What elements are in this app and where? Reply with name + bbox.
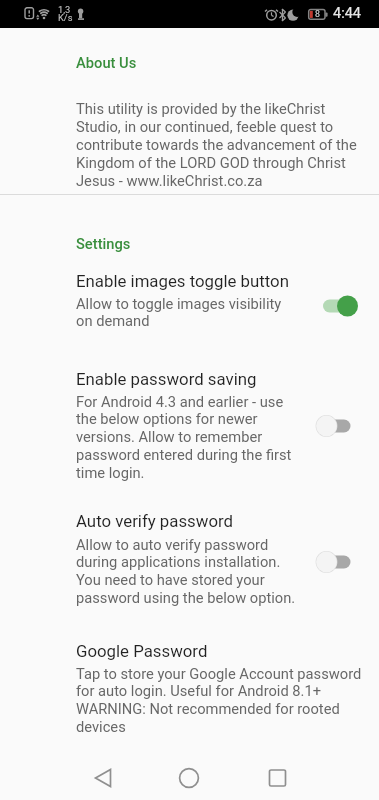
staticText: This utility is provided by the likeChri… <box>76 100 357 189</box>
button[interactable] <box>86 763 116 793</box>
staticText: 8 <box>315 9 320 19</box>
button[interactable] <box>0 633 379 716</box>
staticText: Auto verify password <box>76 511 233 531</box>
button[interactable] <box>0 503 379 587</box>
staticText: 4:44 <box>333 5 361 22</box>
staticText: Google Password <box>76 641 208 661</box>
button[interactable] <box>0 361 379 444</box>
staticText: Allow to auto verify password during app… <box>76 536 296 607</box>
button[interactable] <box>310 291 362 321</box>
staticText: K/s <box>58 12 73 23</box>
staticText: Settings <box>76 235 131 252</box>
button[interactable] <box>174 763 204 793</box>
button[interactable] <box>0 263 379 346</box>
staticText: Enable password saving <box>76 369 257 389</box>
button[interactable] <box>262 763 292 793</box>
staticText: 1,3 <box>58 4 71 15</box>
staticText: Tap to store your Google Account passwor… <box>76 665 362 736</box>
button[interactable] <box>310 547 362 577</box>
staticText: Enable images toggle button <box>76 271 289 291</box>
staticText: Allow to toggle images visibility on dem… <box>76 295 282 330</box>
button[interactable] <box>310 411 362 441</box>
staticText: For Android 4.3 and earlier - use the be… <box>76 393 292 482</box>
staticText: About Us <box>76 54 137 71</box>
